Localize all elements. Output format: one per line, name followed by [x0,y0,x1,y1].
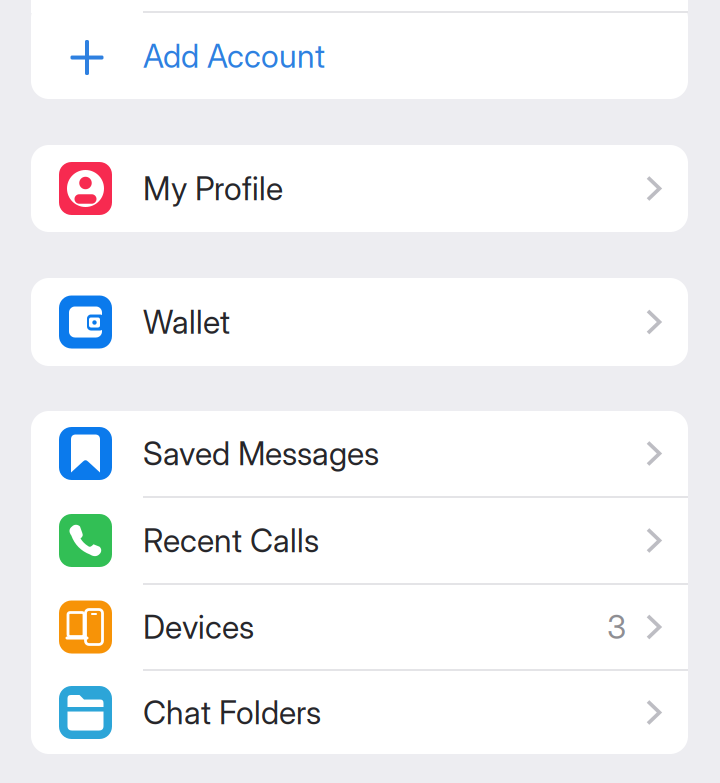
button[interactable]: Recent Calls [31,498,688,583]
button[interactable]: My Profile [31,145,688,232]
staticText: Recent Calls [143,521,319,560]
button[interactable]: Devices [31,585,688,669]
button[interactable]: Saved Messages [31,411,688,496]
staticText: Chat Folders [143,693,321,732]
staticText: Add Account [143,37,325,75]
staticText: Devices [143,608,254,646]
button[interactable]: Add Account [31,13,688,99]
staticText: My Profile [143,169,283,208]
staticText: Saved Messages [143,434,379,473]
button[interactable]: Chat Folders [31,671,688,754]
staticText: 3 [607,608,626,646]
button[interactable]: Wallet [31,278,688,366]
staticText: Wallet [143,303,230,341]
